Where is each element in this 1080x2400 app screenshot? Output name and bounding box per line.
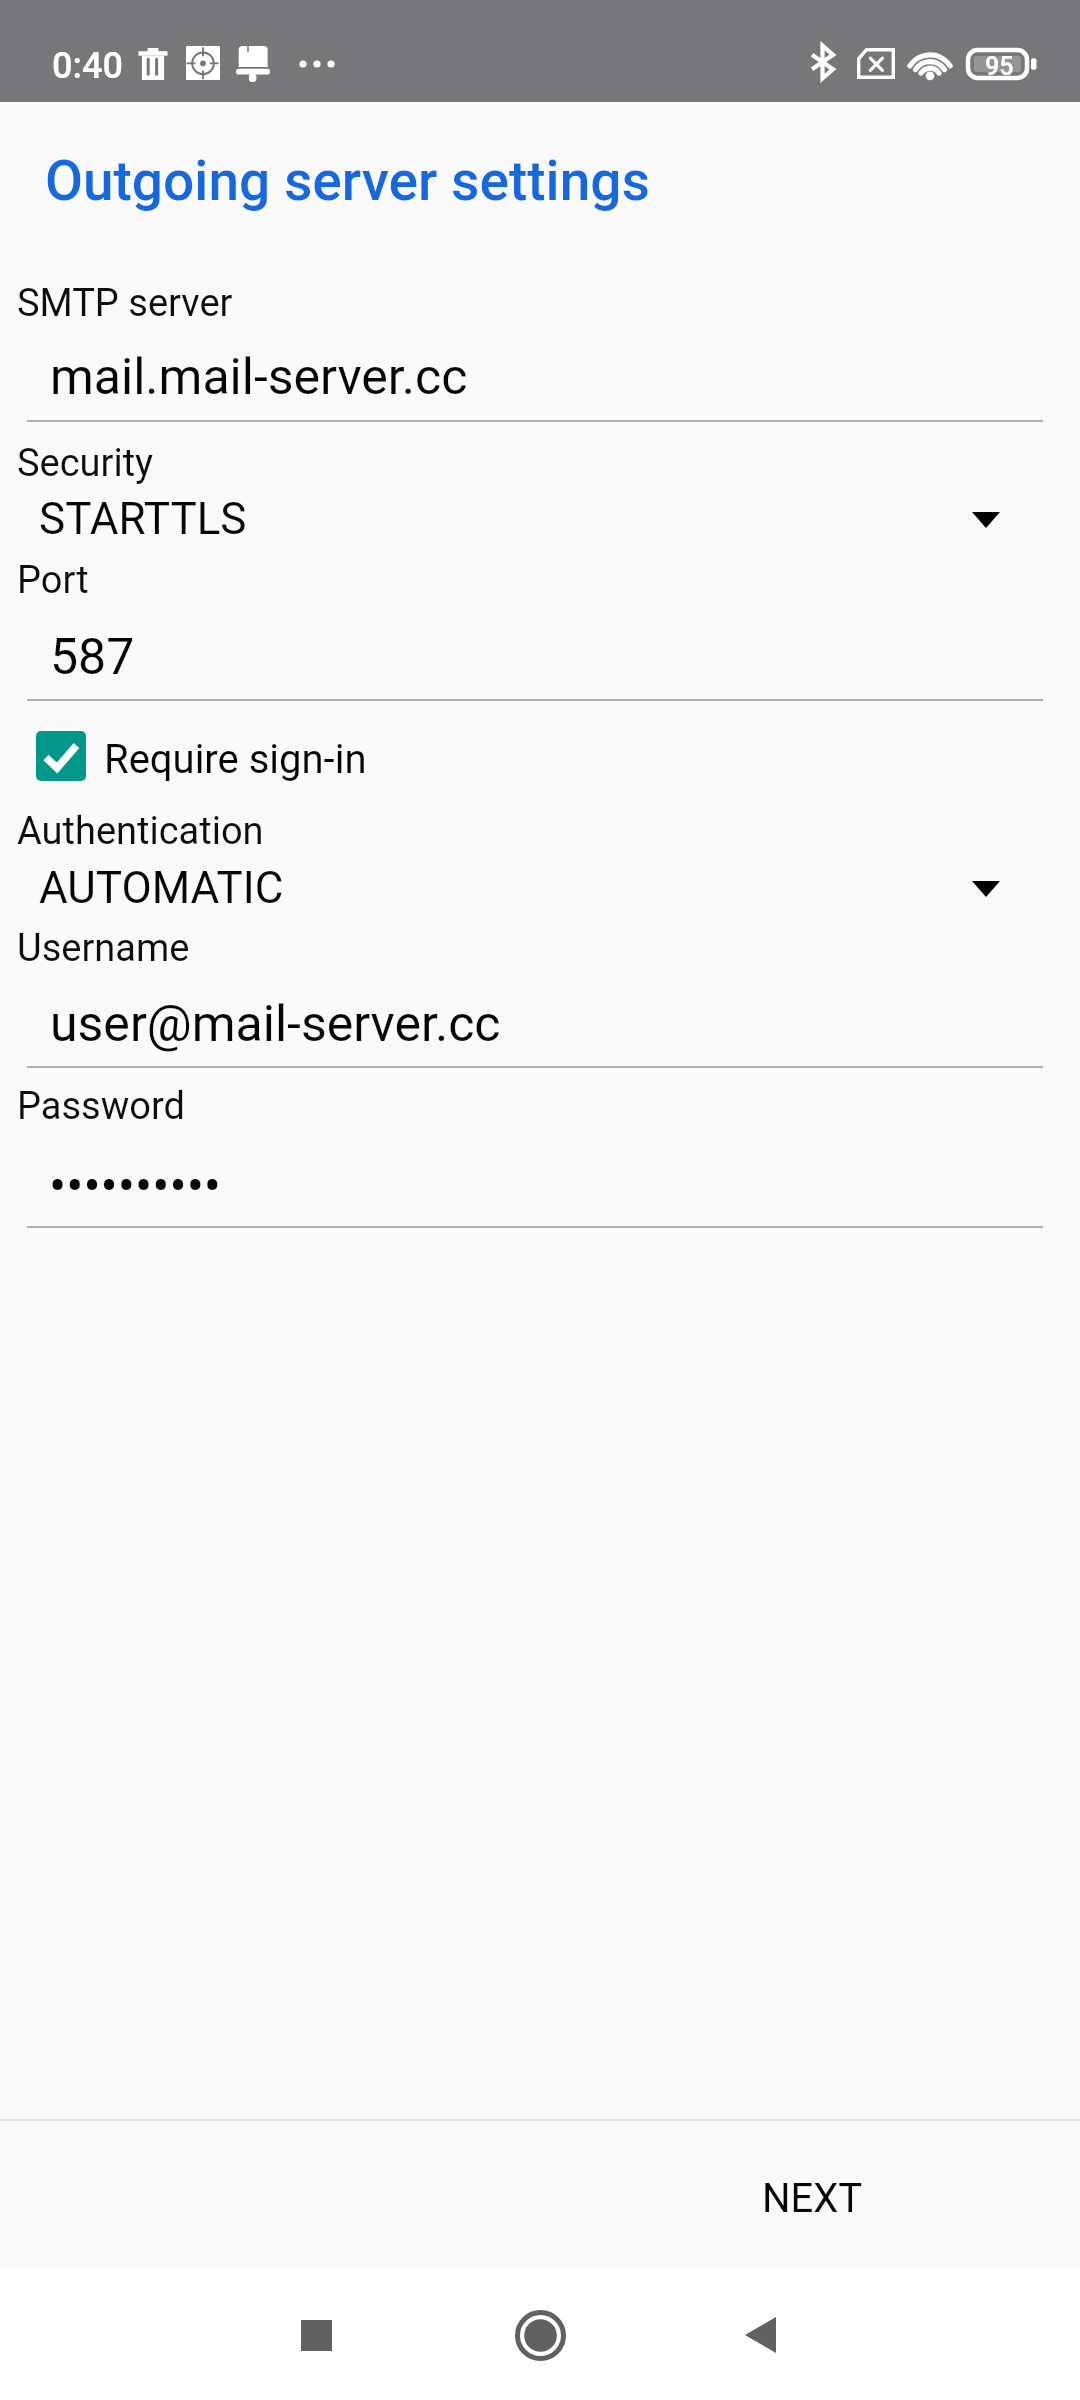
staticText: ••••••••••	[49, 1157, 222, 1217]
staticText: Username	[17, 926, 190, 971]
staticText: Port	[17, 558, 89, 603]
button[interactable]: Recent apps	[241, 2260, 391, 2400]
button[interactable]	[0, 433, 1080, 551]
button[interactable]: Back	[685, 2260, 835, 2400]
button[interactable]	[0, 551, 1080, 701]
staticText: Outgoing server settings	[45, 149, 650, 213]
button[interactable]	[0, 1077, 1080, 1229]
staticText: Authentication	[17, 809, 264, 854]
staticText: AUTOMATIC	[39, 862, 284, 914]
staticText: Security	[17, 441, 154, 486]
staticText: Password	[17, 1084, 185, 1129]
staticText: 587	[50, 628, 135, 687]
button[interactable]: Home	[465, 2260, 615, 2400]
staticText: mail.mail-server.cc	[50, 348, 468, 407]
button[interactable]: Require sign-in	[0, 724, 1080, 788]
staticText: NEXT	[762, 2175, 863, 2222]
staticText: SMTP server	[17, 281, 233, 326]
staticText: 95	[985, 52, 1014, 81]
staticText: STARTTLS	[39, 493, 247, 545]
staticText: 0:40	[52, 45, 123, 87]
button[interactable]: NEXT	[705, 2135, 920, 2261]
button[interactable]	[0, 919, 1080, 1069]
button[interactable]	[0, 272, 1080, 422]
button[interactable]	[0, 801, 1080, 919]
staticText: user@mail-server.cc	[50, 995, 501, 1054]
staticText: Require sign-in	[104, 736, 367, 783]
